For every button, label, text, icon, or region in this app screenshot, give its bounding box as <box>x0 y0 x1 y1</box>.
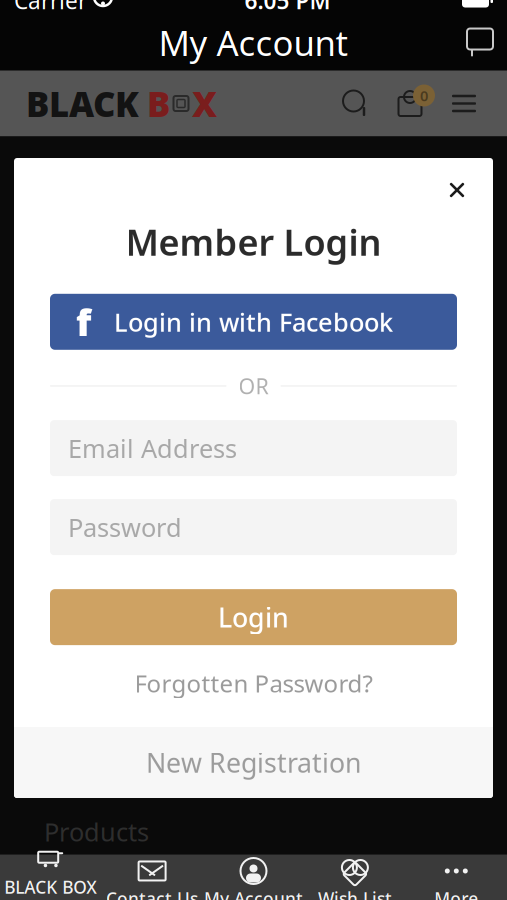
staticText: Login in with Facebook <box>114 305 393 339</box>
button[interactable]: New Registration <box>14 727 493 798</box>
staticText: New Registration <box>146 745 361 780</box>
button[interactable]: My Account <box>203 854 304 900</box>
staticText: BLACK BOX Shop <box>4 875 97 900</box>
staticText: Member Login <box>125 218 381 266</box>
staticText: Wish List <box>318 887 392 900</box>
button[interactable]: Messages <box>453 17 507 67</box>
staticText: More <box>434 887 478 900</box>
button[interactable]: Login <box>50 589 457 645</box>
staticText: Contact Us <box>106 887 198 900</box>
staticText: X <box>192 80 217 126</box>
button[interactable]: Cart, 0 items <box>393 86 427 120</box>
button[interactable]: Wish List <box>304 854 406 900</box>
staticText: B <box>147 80 170 126</box>
staticText: Products <box>44 815 149 848</box>
staticText: f <box>76 297 91 347</box>
staticText: BLACK <box>26 80 139 126</box>
staticText: Login <box>218 599 289 635</box>
button[interactable]: Contact Us <box>101 854 203 900</box>
staticText: 6:05 PM <box>244 0 330 16</box>
button[interactable]: More <box>406 854 507 900</box>
staticText: Forgotten Password? <box>134 667 372 699</box>
button[interactable]: Search <box>339 86 373 120</box>
button[interactable]: Login in with Facebook <box>50 294 457 350</box>
staticText: My Account <box>204 887 303 900</box>
staticText: Password <box>68 510 182 544</box>
staticText: OR <box>238 372 268 400</box>
staticText: My Account <box>158 19 348 65</box>
staticText: 0 <box>420 86 428 105</box>
button[interactable]: Forgotten Password? <box>124 661 382 705</box>
button[interactable]: Menu <box>447 86 481 120</box>
button[interactable]: Close <box>435 170 479 210</box>
staticText: Email Address <box>68 431 237 465</box>
staticText: Carrier <box>14 0 87 16</box>
button[interactable]: BLACK BOX Shop <box>0 854 101 900</box>
